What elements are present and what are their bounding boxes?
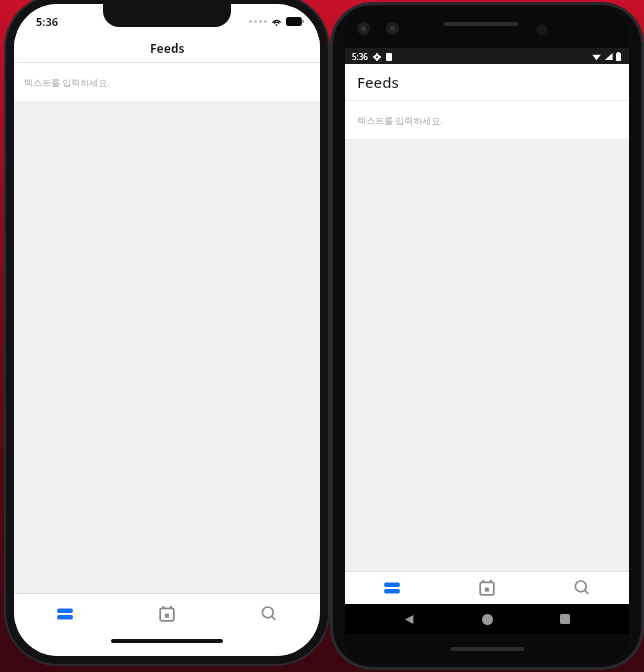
staticText: Feeds: [150, 40, 185, 56]
button[interactable]: Feeds: [14, 594, 116, 634]
button[interactable]: Search: [534, 572, 629, 604]
staticText: 5:36: [36, 14, 58, 29]
button[interactable]: Recent apps: [551, 605, 579, 633]
button[interactable]: Feeds: [345, 572, 439, 604]
button[interactable]: Back: [395, 605, 423, 633]
button[interactable]: Calendar: [439, 572, 534, 604]
button[interactable]: 텍스트를 입력하세요.: [345, 101, 629, 139]
staticText: Feeds: [357, 72, 399, 92]
button[interactable]: Calendar: [116, 594, 218, 634]
staticText: 5:36: [352, 51, 368, 62]
button[interactable]: Home: [473, 605, 501, 633]
button[interactable]: 텍스트를 입력하세요.: [14, 63, 320, 101]
staticText: 텍스트를 입력하세요.: [357, 114, 443, 126]
staticText: 텍스트를 입력하세요.: [24, 76, 110, 88]
button[interactable]: Search: [218, 594, 320, 634]
